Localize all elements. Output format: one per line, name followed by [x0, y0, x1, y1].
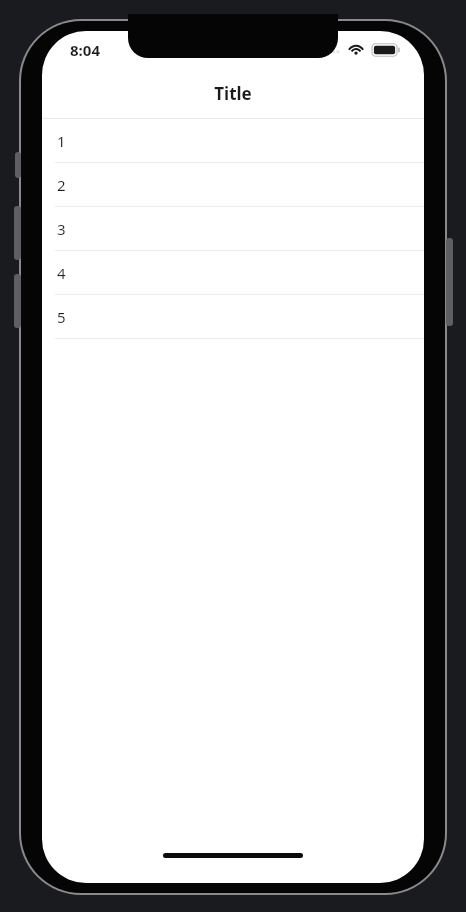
- button[interactable]: 3: [42, 207, 424, 251]
- staticText: Title: [214, 82, 252, 105]
- staticText: 5: [57, 307, 66, 327]
- button[interactable]: 1: [42, 119, 424, 163]
- button[interactable]: 2: [42, 163, 424, 207]
- button[interactable]: 5: [42, 295, 424, 339]
- staticText: 1: [57, 131, 66, 151]
- button[interactable]: 4: [42, 251, 424, 295]
- staticText: 3: [57, 219, 66, 239]
- staticText: 2: [57, 175, 66, 195]
- staticText: 8:04: [70, 40, 100, 60]
- staticText: 4: [57, 263, 66, 283]
